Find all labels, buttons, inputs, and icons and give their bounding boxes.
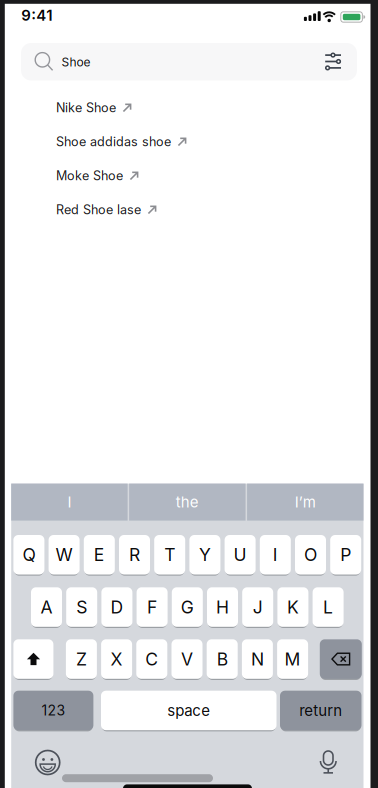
staticText: I [273,544,278,565]
button[interactable]: O [295,534,326,575]
button[interactable]: Moke Shoe [56,164,139,188]
staticText: Red Shoe lase [56,202,141,217]
staticText: V [181,648,193,670]
button[interactable]: return [280,690,361,731]
button[interactable]: E [84,534,115,575]
staticText: Y [199,544,211,565]
staticText: J [253,596,263,618]
button[interactable]: B [207,639,238,679]
button[interactable]: Z [66,639,97,679]
button[interactable]: Shoe [21,43,357,80]
button[interactable]: N [242,639,273,679]
staticText: H [216,596,229,618]
button[interactable]: G [172,587,203,627]
button[interactable]: U [225,534,256,575]
button[interactable]: 123 [13,690,93,731]
staticText: Moke Shoe [56,168,123,183]
staticText: D [110,596,123,618]
button[interactable]: T [154,534,185,575]
staticText: return [299,701,342,719]
staticText: F [147,596,157,618]
staticText: Z [76,648,87,670]
staticText: E [94,544,105,565]
button[interactable] [13,639,53,679]
button[interactable]: Nike Shoe [56,96,132,120]
staticText: 123 [41,702,65,719]
button[interactable]: F [137,587,168,627]
staticText: T [164,544,175,565]
button[interactable]: I [260,534,291,575]
button[interactable]: M [277,639,308,679]
staticText: W [56,544,73,565]
staticText: B [217,648,228,670]
staticText: R [129,544,140,565]
staticText: A [40,596,52,618]
button[interactable] [35,749,61,775]
button[interactable]: L [313,587,344,627]
button[interactable]: I [11,484,128,521]
button[interactable]: P [330,534,361,575]
button[interactable] [319,47,347,75]
staticText: 9:41 [21,6,52,24]
staticText: L [323,596,333,618]
button[interactable]: I’m [247,484,363,521]
staticText: I’m [295,493,316,511]
button[interactable]: Q [13,534,44,575]
staticText: N [251,648,264,670]
staticText: Shoe [61,55,90,69]
staticText: the [176,493,199,511]
staticText: P [340,544,351,565]
button[interactable]: the [129,484,245,521]
button[interactable]: A [31,587,62,627]
staticText: K [287,596,299,618]
staticText: U [234,544,247,565]
staticText: Shoe addidas shoe [56,134,171,149]
staticText: C [145,648,158,670]
button[interactable]: K [277,587,308,627]
staticText: space [167,701,210,719]
button[interactable] [319,750,337,774]
staticText: O [304,544,317,565]
staticText: Nike Shoe [56,100,116,115]
button[interactable] [320,639,362,679]
button[interactable]: V [171,639,202,679]
button[interactable]: H [207,587,238,627]
staticText: X [111,648,123,670]
staticText: I [67,493,71,511]
button[interactable]: R [119,534,150,575]
staticText: Q [22,544,35,565]
staticText: G [181,596,194,618]
button[interactable]: S [66,587,97,627]
button[interactable]: C [136,639,167,679]
staticText: M [285,648,301,670]
staticText: S [76,596,87,618]
button[interactable]: X [101,639,132,679]
button[interactable]: Red Shoe lase [56,198,157,222]
button[interactable]: Y [189,534,220,575]
button[interactable]: J [242,587,273,627]
button[interactable]: Shoe addidas shoe [56,130,187,154]
button[interactable]: W [49,534,80,575]
button[interactable]: D [101,587,132,627]
button[interactable]: space [101,690,276,731]
